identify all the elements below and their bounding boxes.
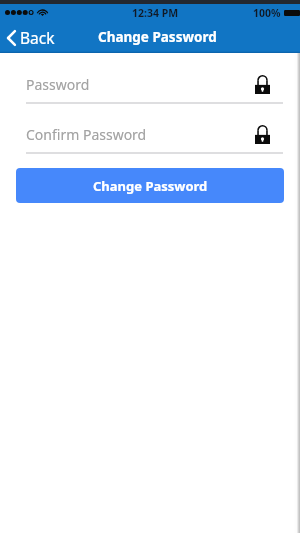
staticText: 100% (253, 6, 281, 20)
button[interactable]: Password (0, 74, 300, 104)
staticText: Confirm Password (26, 125, 147, 144)
other: Secure field (255, 125, 270, 144)
staticText: 12:34 PM (132, 6, 179, 20)
button[interactable]: Back (0, 23, 63, 52)
staticText: Change Password (98, 28, 217, 46)
button[interactable]: Confirm Password (0, 124, 300, 154)
staticText: Password (26, 75, 90, 94)
staticText: Change Password (93, 177, 208, 195)
button[interactable]: Change Password (16, 168, 284, 203)
other: Secure field (255, 75, 270, 94)
staticText: Back (20, 27, 55, 48)
